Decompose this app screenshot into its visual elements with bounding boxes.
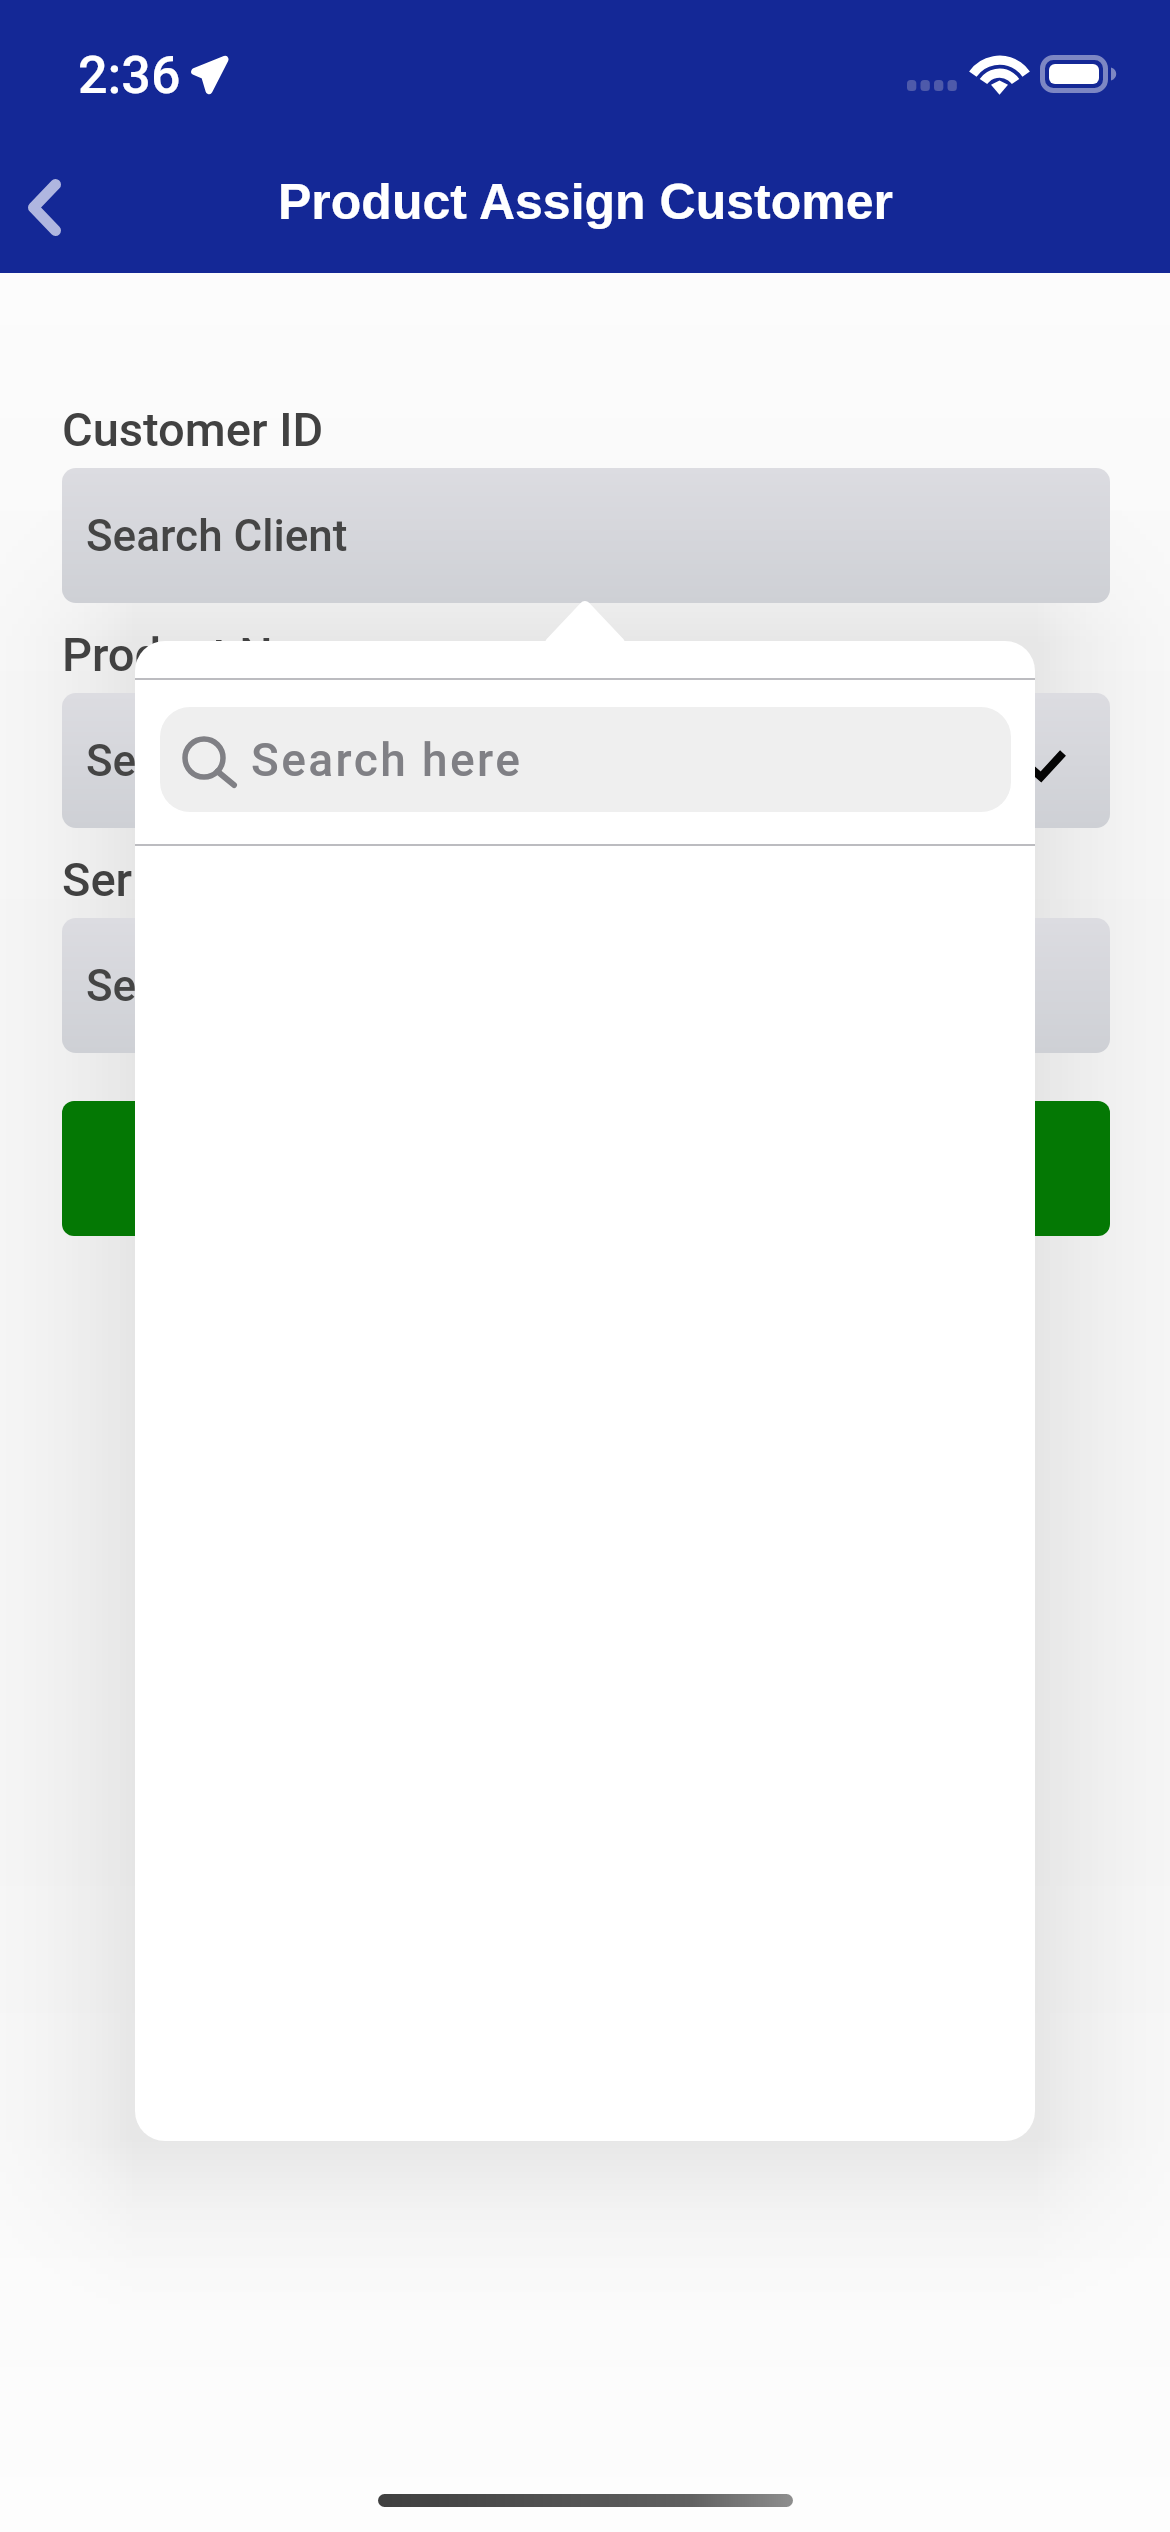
- button[interactable]: Select Product: [62, 693, 1110, 828]
- button[interactable]: Assign Product: [62, 1101, 1110, 1236]
- button[interactable]: Confirm product: [1008, 730, 1080, 802]
- staticText: Product Assign Customer: [278, 174, 893, 230]
- button[interactable]: Search Client: [62, 468, 1110, 603]
- button[interactable]: Search here: [160, 707, 1011, 812]
- staticText: 2:36: [78, 45, 181, 106]
- staticText: Select Product: [86, 735, 375, 787]
- staticText: Search here: [251, 733, 523, 787]
- button[interactable]: Select Serial: [62, 918, 1110, 1053]
- staticText: Customer ID: [62, 402, 324, 457]
- staticText: Search Client: [86, 510, 348, 562]
- staticText: Serial Number: [62, 852, 362, 907]
- button[interactable]: Back: [0, 150, 96, 264]
- staticText: Select Serial: [86, 960, 332, 1012]
- staticText: Product Name: [62, 627, 365, 682]
